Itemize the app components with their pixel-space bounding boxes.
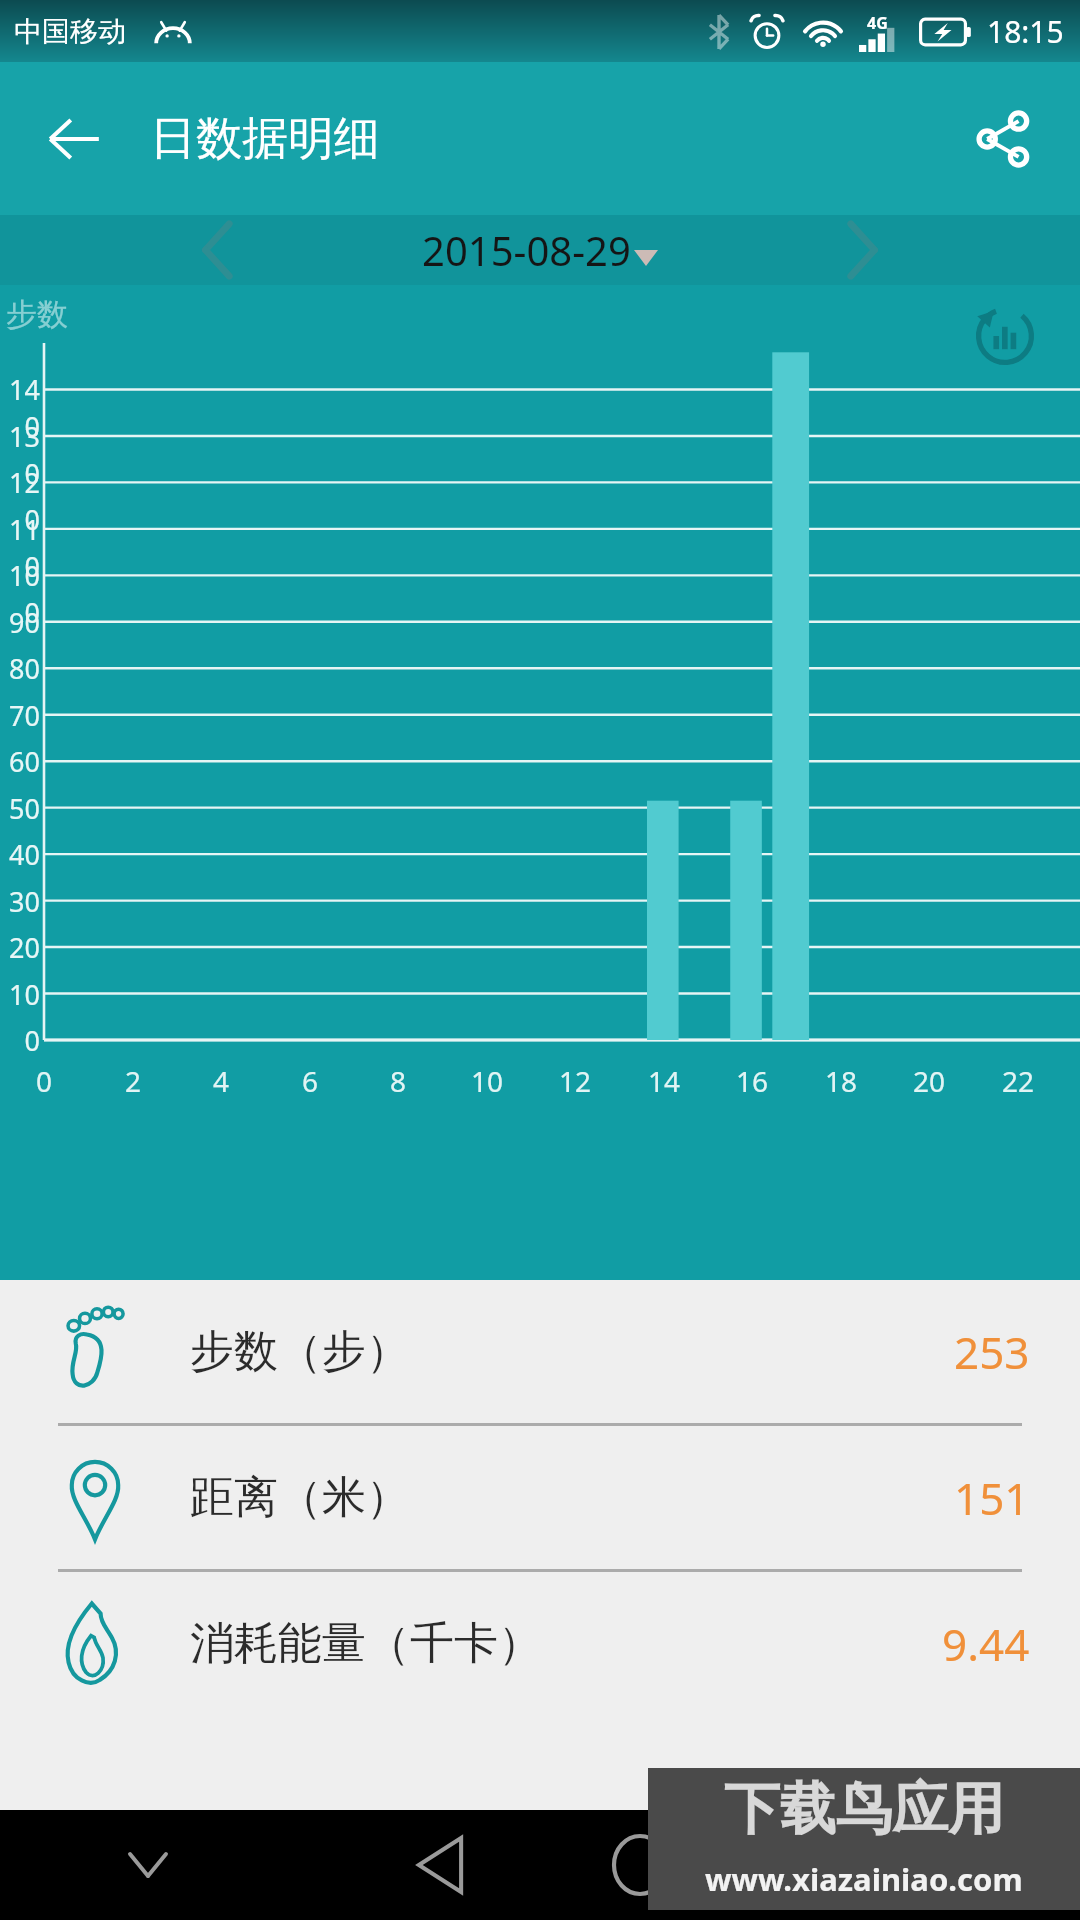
staticText: 60 bbox=[0, 743, 40, 780]
staticText: 50 bbox=[0, 790, 40, 827]
staticText: 距离（米） bbox=[190, 1470, 410, 1525]
staticText: 6 bbox=[284, 1062, 336, 1100]
staticText: 140 bbox=[0, 371, 40, 445]
staticText: 日数据明细 bbox=[150, 110, 380, 168]
staticText: 100 bbox=[0, 557, 40, 631]
staticText: 10 bbox=[461, 1062, 513, 1100]
staticText: 4G bbox=[867, 12, 888, 34]
button[interactable]: Hide keyboard bbox=[105, 1822, 191, 1908]
button[interactable]: Home bbox=[590, 1815, 690, 1915]
staticText: 中国移动 bbox=[14, 14, 126, 49]
staticText: 0 bbox=[0, 1022, 40, 1059]
button[interactable]: Next day bbox=[824, 215, 902, 285]
staticText: 0 bbox=[18, 1062, 70, 1100]
staticText: 14 bbox=[638, 1062, 690, 1100]
staticText: 253 bbox=[954, 1322, 1030, 1382]
staticText: 151 bbox=[954, 1468, 1030, 1528]
staticText: 22 bbox=[992, 1062, 1044, 1100]
staticText: 8 bbox=[372, 1062, 424, 1100]
staticText: 40 bbox=[0, 836, 40, 873]
staticText: 70 bbox=[0, 697, 40, 734]
staticText: 20 bbox=[903, 1062, 955, 1100]
staticText: 120 bbox=[0, 464, 40, 538]
button[interactable]: 2015-08-29 bbox=[422, 223, 658, 277]
staticText: 90 bbox=[0, 604, 40, 641]
staticText: 16 bbox=[726, 1062, 778, 1100]
button[interactable]: Switch chart type bbox=[962, 293, 1048, 379]
staticText: 10 bbox=[0, 976, 40, 1013]
staticText: 下载鸟应用 bbox=[724, 1774, 1004, 1845]
staticText: 30 bbox=[0, 883, 40, 920]
button[interactable]: 消耗能量（千卡） bbox=[0, 1572, 1080, 1715]
staticText: www.xiazainiao.com bbox=[705, 1858, 1023, 1900]
staticText: 9.44 bbox=[942, 1614, 1030, 1674]
button[interactable]: Previous day bbox=[178, 215, 256, 285]
staticText: 20 bbox=[0, 929, 40, 966]
staticText: 18 bbox=[815, 1062, 867, 1100]
button[interactable]: 距离（米） bbox=[0, 1426, 1080, 1569]
staticText: 4 bbox=[195, 1062, 247, 1100]
staticText: 12 bbox=[549, 1062, 601, 1100]
staticText: 110 bbox=[0, 511, 40, 585]
staticText: 18:15 bbox=[987, 11, 1064, 52]
button[interactable]: 步数（步） bbox=[0, 1280, 1080, 1423]
staticText: 步数（步） bbox=[190, 1324, 410, 1379]
staticText: 步数 bbox=[6, 295, 68, 334]
button[interactable]: Back bbox=[30, 95, 118, 183]
staticText: 2 bbox=[107, 1062, 159, 1100]
button[interactable]: Share bbox=[958, 93, 1050, 185]
staticText: 2015-08-29 bbox=[422, 223, 631, 277]
button[interactable]: Back bbox=[390, 1815, 490, 1915]
staticText: 80 bbox=[0, 650, 40, 687]
staticText: 130 bbox=[0, 418, 40, 492]
staticText: 消耗能量（千卡） bbox=[190, 1616, 542, 1671]
